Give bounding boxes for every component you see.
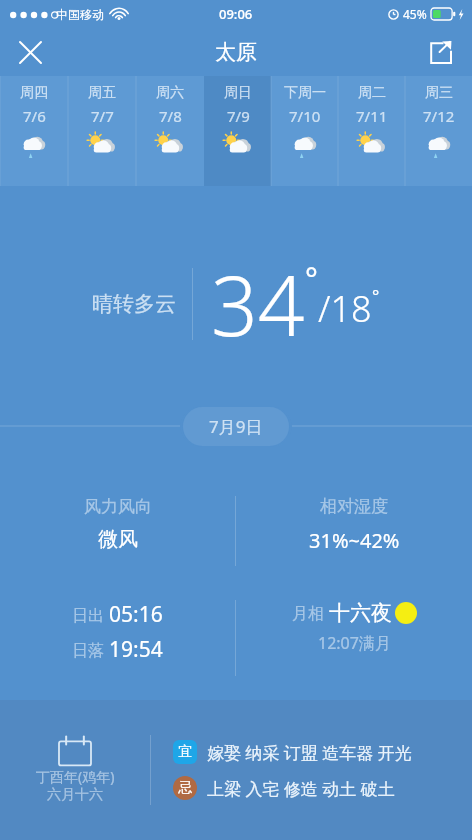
staticText: 周四	[20, 84, 48, 102]
staticText: 日出	[72, 604, 109, 626]
button[interactable]: Share	[418, 30, 462, 74]
staticText: 7/9	[227, 106, 250, 126]
staticText: 34	[211, 248, 305, 360]
staticText: 月相	[292, 602, 329, 624]
staticText: 下周一	[284, 84, 326, 102]
staticText: 宜	[178, 743, 192, 761]
staticText: 7/8	[159, 106, 182, 126]
staticText: 六月十六	[47, 786, 103, 804]
staticText: 日落	[72, 639, 109, 661]
staticText: 风力风向	[84, 496, 152, 517]
staticText: 周二	[358, 84, 386, 102]
button[interactable]: 周三	[405, 76, 472, 186]
staticText: 周五	[88, 84, 116, 102]
staticText: 太原	[215, 39, 257, 65]
staticText: °	[372, 284, 380, 307]
button[interactable]: Close	[8, 30, 52, 74]
staticText: 丁酉年(鸡年)	[36, 767, 115, 786]
staticText: 嫁娶 纳采 订盟 造车器 开光	[207, 741, 412, 764]
staticText: 7/7	[91, 106, 114, 126]
button[interactable]: 丁酉年(鸡年)	[0, 700, 472, 840]
button[interactable]: 周六	[136, 76, 204, 186]
staticText: 09:06	[219, 5, 253, 23]
staticText: 7/10	[289, 106, 321, 126]
button[interactable]: 周五	[68, 76, 136, 186]
staticText: 忌	[178, 779, 192, 797]
staticText: 十六夜	[329, 600, 392, 626]
staticText: 12:07满月	[318, 632, 391, 654]
staticText: 周六	[156, 84, 184, 102]
staticText: 7月9日	[209, 415, 263, 438]
staticText: °	[305, 258, 318, 299]
staticText: /18	[318, 284, 372, 333]
staticText: 7/11	[356, 106, 388, 126]
staticText: 周日	[224, 84, 252, 102]
staticText: 45%	[403, 6, 427, 22]
staticText: 晴转多云	[92, 291, 176, 317]
staticText: 7/6	[23, 106, 46, 126]
button[interactable]: 周二	[338, 76, 405, 186]
staticText: 上梁 入宅 修造 动土 破土	[207, 777, 395, 800]
button[interactable]: 下周一	[271, 76, 338, 186]
staticText: 中国移动	[56, 7, 104, 22]
staticText: 微风	[98, 527, 138, 552]
staticText: 05:16	[109, 600, 163, 629]
staticText: 周三	[425, 84, 453, 102]
staticText: 相对湿度	[320, 496, 388, 517]
staticText: 7/12	[423, 106, 455, 126]
staticText: 31%~42%	[309, 527, 400, 554]
button[interactable]: 周日	[204, 76, 271, 186]
staticText: 19:54	[109, 635, 163, 664]
button[interactable]: 周四	[0, 76, 68, 186]
